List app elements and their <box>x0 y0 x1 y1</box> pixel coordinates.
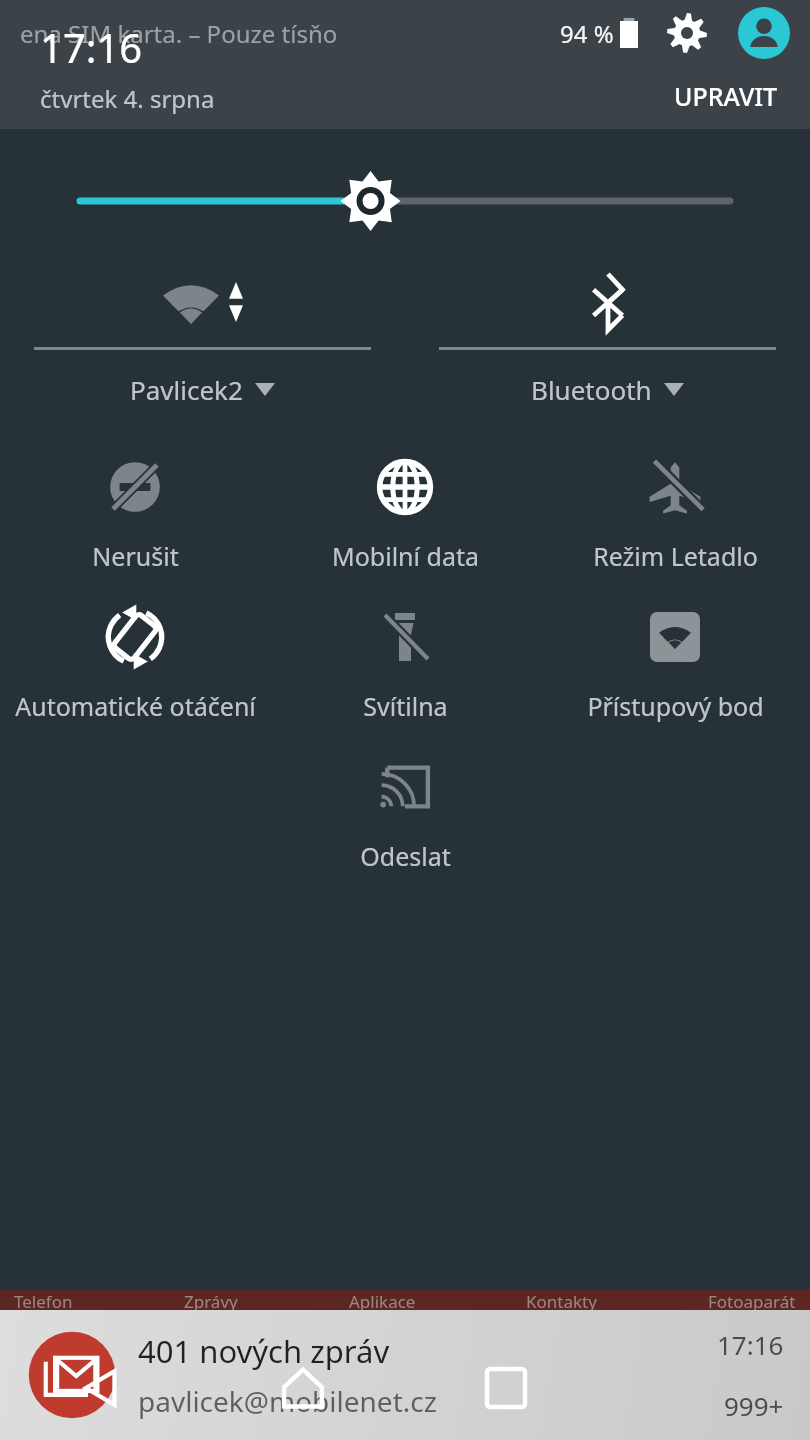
staticText: Pavlicek2 <box>130 372 243 407</box>
button[interactable]: Home <box>202 1358 404 1418</box>
button[interactable]: Nerušit <box>0 451 270 573</box>
staticText: Kontakty <box>526 1290 597 1310</box>
staticText: Přístupový bod <box>587 689 764 723</box>
staticText: 17:16 <box>717 1327 784 1362</box>
button[interactable]: 401 nových zpráv <box>0 1310 810 1440</box>
staticText: Odeslat <box>360 839 451 873</box>
button[interactable]: Odeslat <box>270 751 540 873</box>
staticText: Nerušit <box>92 539 179 573</box>
staticText: ena SIM karta. – Pouze tísňo <box>20 17 560 50</box>
staticText: 999+ <box>724 1388 784 1423</box>
staticText: 401 nových zpráv <box>138 1330 390 1372</box>
button[interactable]: Recents <box>404 1358 607 1418</box>
staticText: Automatické otáčení <box>15 689 256 723</box>
button[interactable]: User <box>736 5 792 61</box>
staticText: čtvrtek 4. srpna <box>40 82 215 115</box>
staticText: Telefon <box>14 1290 73 1310</box>
button[interactable]: Settings <box>664 10 710 56</box>
staticText: Mobilní data <box>332 539 479 573</box>
button[interactable]: Pavlicek2 <box>0 271 405 407</box>
button[interactable]: Svítilna <box>270 601 540 723</box>
button[interactable]: Bluetooth <box>405 271 810 407</box>
button[interactable]: Automatické otáčení <box>0 601 270 723</box>
button[interactable]: UPRAVIT <box>666 71 786 121</box>
staticText: Zprávy <box>184 1290 238 1310</box>
button[interactable]: Přístupový bod <box>540 601 810 723</box>
staticText: pavlicek@mobilenet.cz <box>138 1382 437 1420</box>
staticText: Fotoaparát <box>708 1290 796 1310</box>
button[interactable]: Režim Letadlo <box>540 451 810 573</box>
staticText: Bluetooth <box>531 372 652 407</box>
button[interactable]: Mobilní data <box>270 451 540 573</box>
staticText: Svítilna <box>363 689 448 723</box>
staticText: Režim Letadlo <box>593 539 758 573</box>
staticText: Aplikace <box>349 1290 416 1310</box>
button[interactable]: Brightness <box>0 171 810 231</box>
staticText: 94 % <box>560 17 614 50</box>
staticText: UPRAVIT <box>674 79 778 113</box>
button[interactable]: Back <box>0 1358 202 1418</box>
staticText: 17:16 <box>40 20 143 74</box>
